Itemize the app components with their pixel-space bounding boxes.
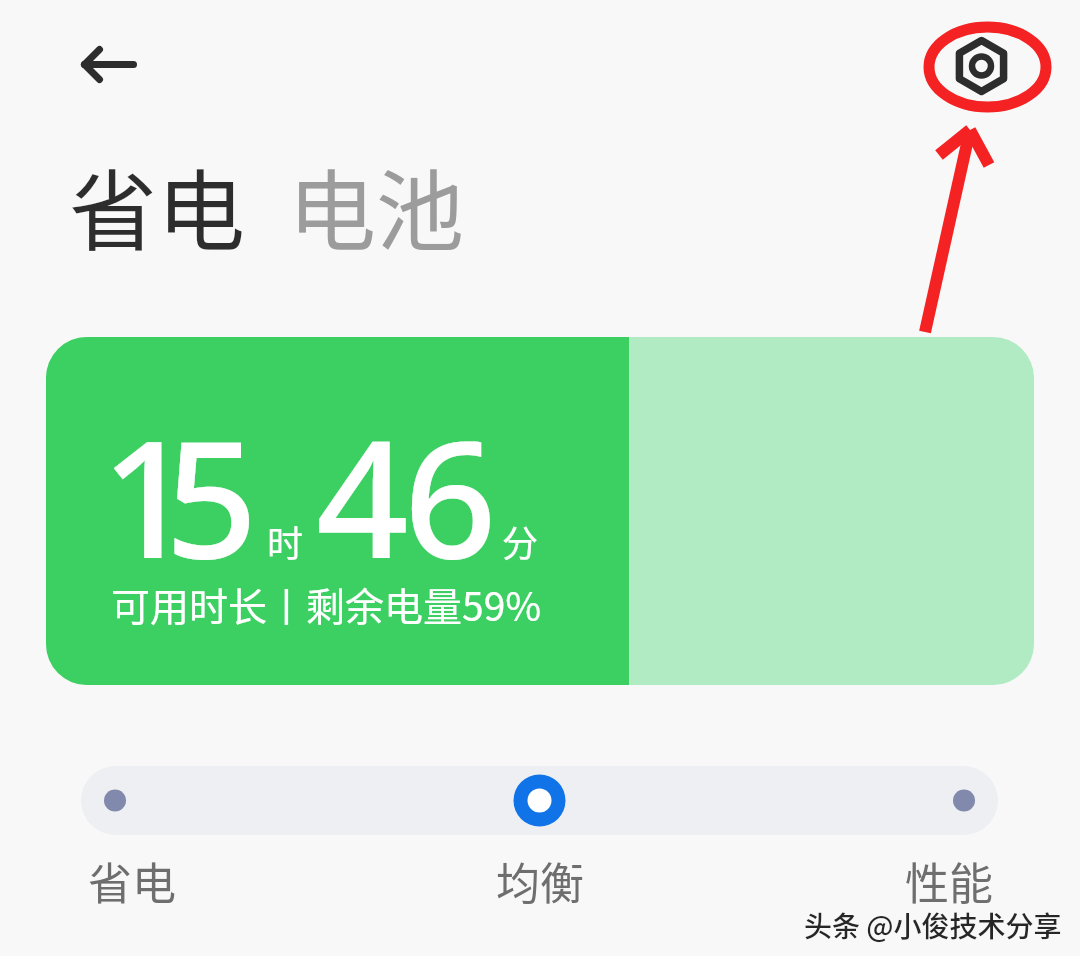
staticText: 5 — [165, 385, 258, 606]
button[interactable]: 1 — [46, 337, 1034, 685]
staticText: 省电 — [69, 141, 246, 268]
button[interactable]: 性能 — [905, 849, 993, 913]
button[interactable]: 省电 — [88, 849, 176, 913]
staticText: 头条 @小俊技术分享 — [804, 905, 1062, 946]
staticText: 性能 — [905, 849, 993, 913]
button[interactable]: 省电 — [59, 136, 236, 263]
button[interactable]: Settings — [941, 20, 1033, 112]
button[interactable]: 均衡 — [496, 849, 584, 913]
staticText: 可用时长丨剩余电量59% — [111, 576, 542, 632]
staticText: 6 — [404, 385, 497, 606]
staticText: 时 — [267, 515, 304, 567]
staticText: 分 — [502, 515, 539, 567]
button[interactable]: 电池 — [278, 136, 455, 263]
staticText: 均衡 — [496, 849, 584, 913]
button[interactable]: Balanced mode — [505, 766, 574, 835]
staticText: 4 — [316, 385, 409, 606]
staticText: 省电 — [88, 849, 176, 913]
staticText: 电池 — [288, 141, 465, 268]
staticText: 1 — [101, 385, 194, 606]
button[interactable]: Back — [61, 25, 139, 103]
